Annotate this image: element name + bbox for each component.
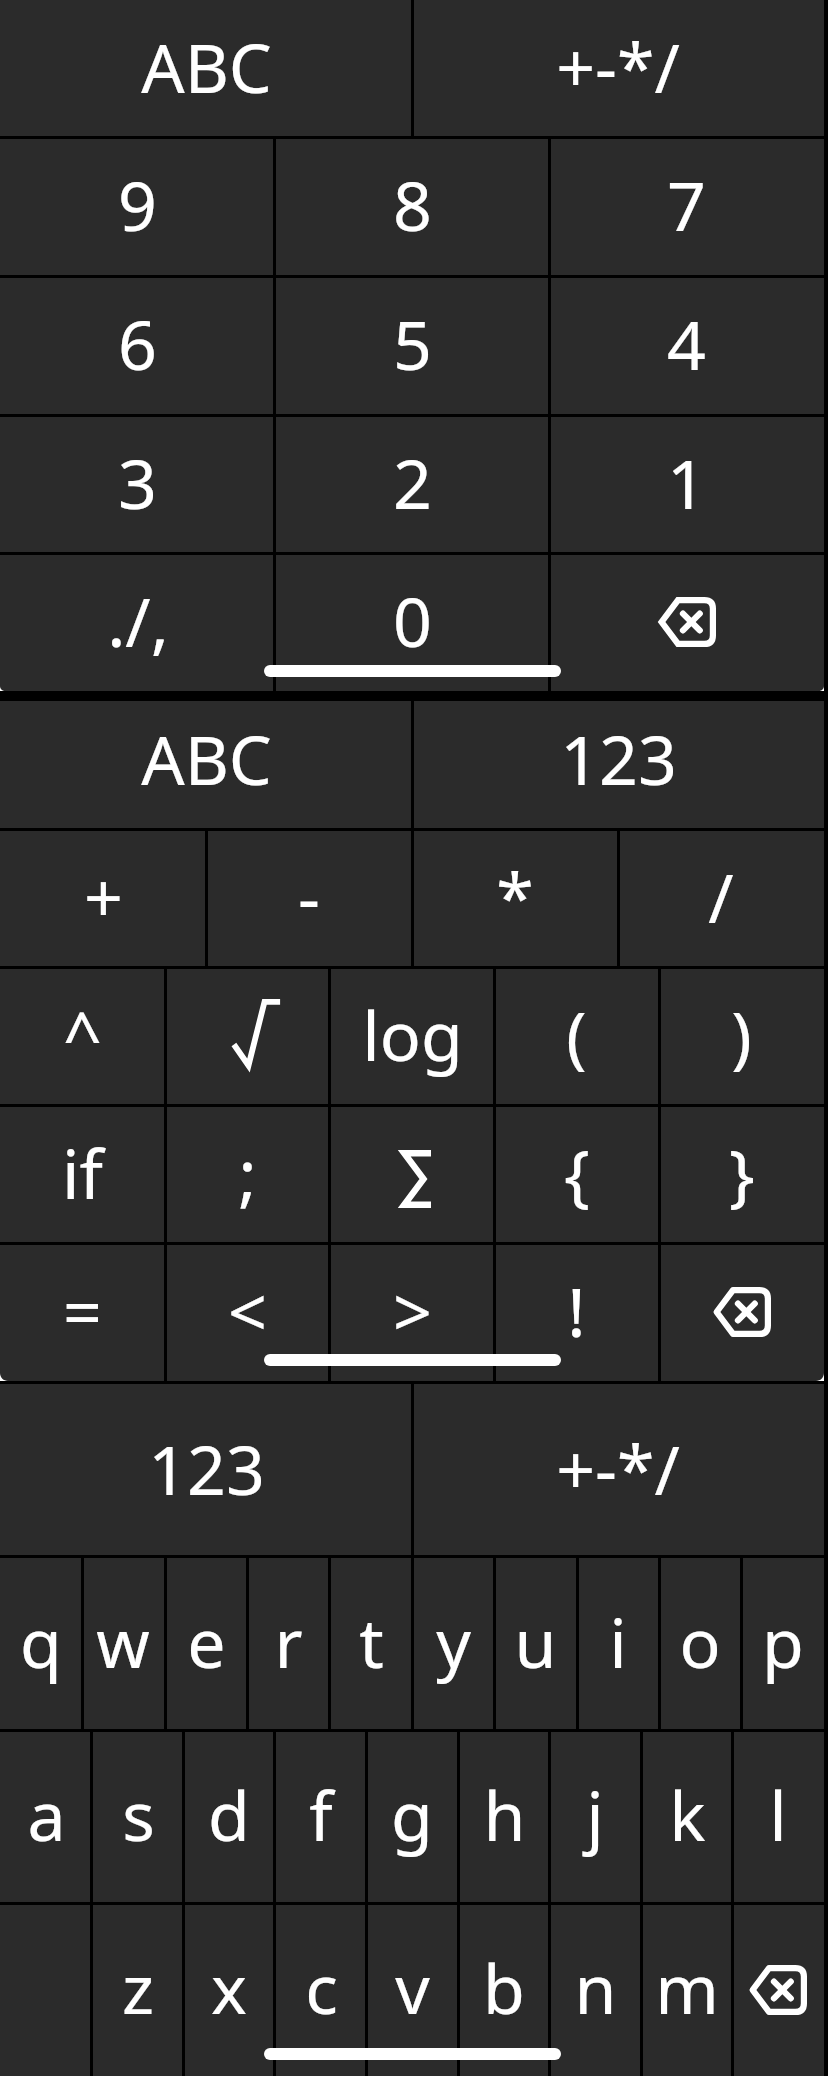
staticText: ./,: [107, 574, 169, 667]
staticText: m: [655, 1941, 719, 2034]
button[interactable]: 8: [275, 137, 550, 276]
button[interactable]: 5: [275, 276, 550, 415]
button[interactable]: 3: [0, 415, 275, 553]
button[interactable]: +-*/: [412, 1384, 824, 1556]
button[interactable]: b: [458, 1903, 550, 2076]
staticText: <: [228, 1264, 267, 1357]
staticText: q: [20, 1595, 62, 1688]
staticText: 5: [393, 297, 432, 390]
button[interactable]: l: [732, 1730, 824, 1903]
staticText: >: [393, 1264, 432, 1357]
staticText: u: [514, 1595, 557, 1688]
button[interactable]: +-*/: [412, 0, 824, 137]
staticText: if: [62, 1126, 103, 1219]
button[interactable]: g: [366, 1730, 458, 1903]
button[interactable]: Backspace: [659, 1243, 824, 1381]
staticText: j: [586, 1768, 604, 1861]
button[interactable]: if: [0, 1105, 165, 1243]
staticText: l: [769, 1768, 787, 1861]
button[interactable]: 4: [549, 276, 824, 415]
staticText: o: [679, 1595, 721, 1688]
button[interactable]: ;: [165, 1105, 330, 1243]
button[interactable]: /: [618, 829, 824, 967]
button[interactable]: 123: [0, 1384, 412, 1556]
button[interactable]: ABC: [0, 691, 412, 829]
button[interactable]: n: [549, 1903, 641, 2076]
staticText: 123: [560, 712, 677, 805]
staticText: 3: [118, 436, 157, 529]
button[interactable]: r: [247, 1556, 329, 1730]
button[interactable]: e: [165, 1556, 247, 1730]
button[interactable]: Sum: [330, 1105, 495, 1243]
button[interactable]: t: [330, 1556, 412, 1730]
button[interactable]: 7: [549, 137, 824, 276]
button[interactable]: 0: [275, 553, 550, 691]
button[interactable]: k: [641, 1730, 733, 1903]
staticText: !: [567, 1264, 586, 1357]
button[interactable]: ./,: [0, 553, 275, 691]
button[interactable]: }: [659, 1105, 824, 1243]
staticText: h: [483, 1768, 526, 1861]
button[interactable]: log: [330, 967, 495, 1105]
staticText: {: [564, 1126, 590, 1219]
button[interactable]: f: [275, 1730, 367, 1903]
button[interactable]: {: [494, 1105, 659, 1243]
button[interactable]: u: [494, 1556, 576, 1730]
staticText: k: [669, 1768, 706, 1861]
button[interactable]: -: [206, 829, 412, 967]
button[interactable]: Backspace: [549, 553, 824, 691]
staticText: v: [395, 1941, 430, 2034]
staticText: w: [96, 1595, 150, 1688]
button[interactable]: m: [641, 1903, 733, 2076]
button[interactable]: (: [494, 967, 659, 1105]
button[interactable]: d: [183, 1730, 275, 1903]
staticText: *: [496, 850, 534, 943]
button[interactable]: <: [165, 1243, 330, 1381]
staticText: g: [391, 1768, 433, 1861]
button[interactable]: h: [458, 1730, 550, 1903]
button[interactable]: i: [577, 1556, 659, 1730]
button[interactable]: 2: [275, 415, 550, 553]
button[interactable]: 1: [549, 415, 824, 553]
staticText: x: [211, 1941, 247, 2034]
button[interactable]: s: [92, 1730, 184, 1903]
button[interactable]: w: [82, 1556, 164, 1730]
staticText: s: [122, 1768, 155, 1861]
staticText: ABC: [141, 20, 272, 113]
button[interactable]: c: [275, 1903, 367, 2076]
button[interactable]: x: [183, 1903, 275, 2076]
button[interactable]: a: [0, 1730, 92, 1903]
staticText: -: [298, 850, 320, 943]
button[interactable]: *: [412, 829, 618, 967]
button[interactable]: z: [92, 1903, 184, 2076]
button[interactable]: 9: [0, 137, 275, 276]
button[interactable]: 6: [0, 276, 275, 415]
staticText: +: [84, 850, 123, 943]
staticText: y: [436, 1595, 471, 1688]
staticText: a: [27, 1768, 66, 1861]
button[interactable]: ): [659, 967, 824, 1105]
button[interactable]: ^: [0, 967, 165, 1105]
button[interactable]: p: [742, 1556, 824, 1730]
button[interactable]: +: [0, 829, 206, 967]
staticText: (: [566, 988, 587, 1081]
staticText: 6: [118, 297, 157, 390]
button[interactable]: ABC: [0, 0, 412, 137]
staticText: }: [729, 1126, 755, 1219]
staticText: log: [362, 988, 463, 1081]
button[interactable]: j: [549, 1730, 641, 1903]
button[interactable]: =: [0, 1243, 165, 1381]
button[interactable]: v: [366, 1903, 458, 2076]
button[interactable]: 123: [412, 691, 824, 829]
button[interactable]: o: [659, 1556, 741, 1730]
staticText: +-*/: [556, 20, 680, 113]
button[interactable]: Backspace: [732, 1903, 824, 2076]
staticText: ABC: [141, 712, 272, 805]
button[interactable]: !: [494, 1243, 659, 1381]
staticText: i: [609, 1595, 627, 1688]
button[interactable]: [0, 1903, 92, 2076]
button[interactable]: >: [330, 1243, 495, 1381]
button[interactable]: Square root: [165, 967, 330, 1105]
button[interactable]: y: [412, 1556, 494, 1730]
button[interactable]: q: [0, 1556, 82, 1730]
